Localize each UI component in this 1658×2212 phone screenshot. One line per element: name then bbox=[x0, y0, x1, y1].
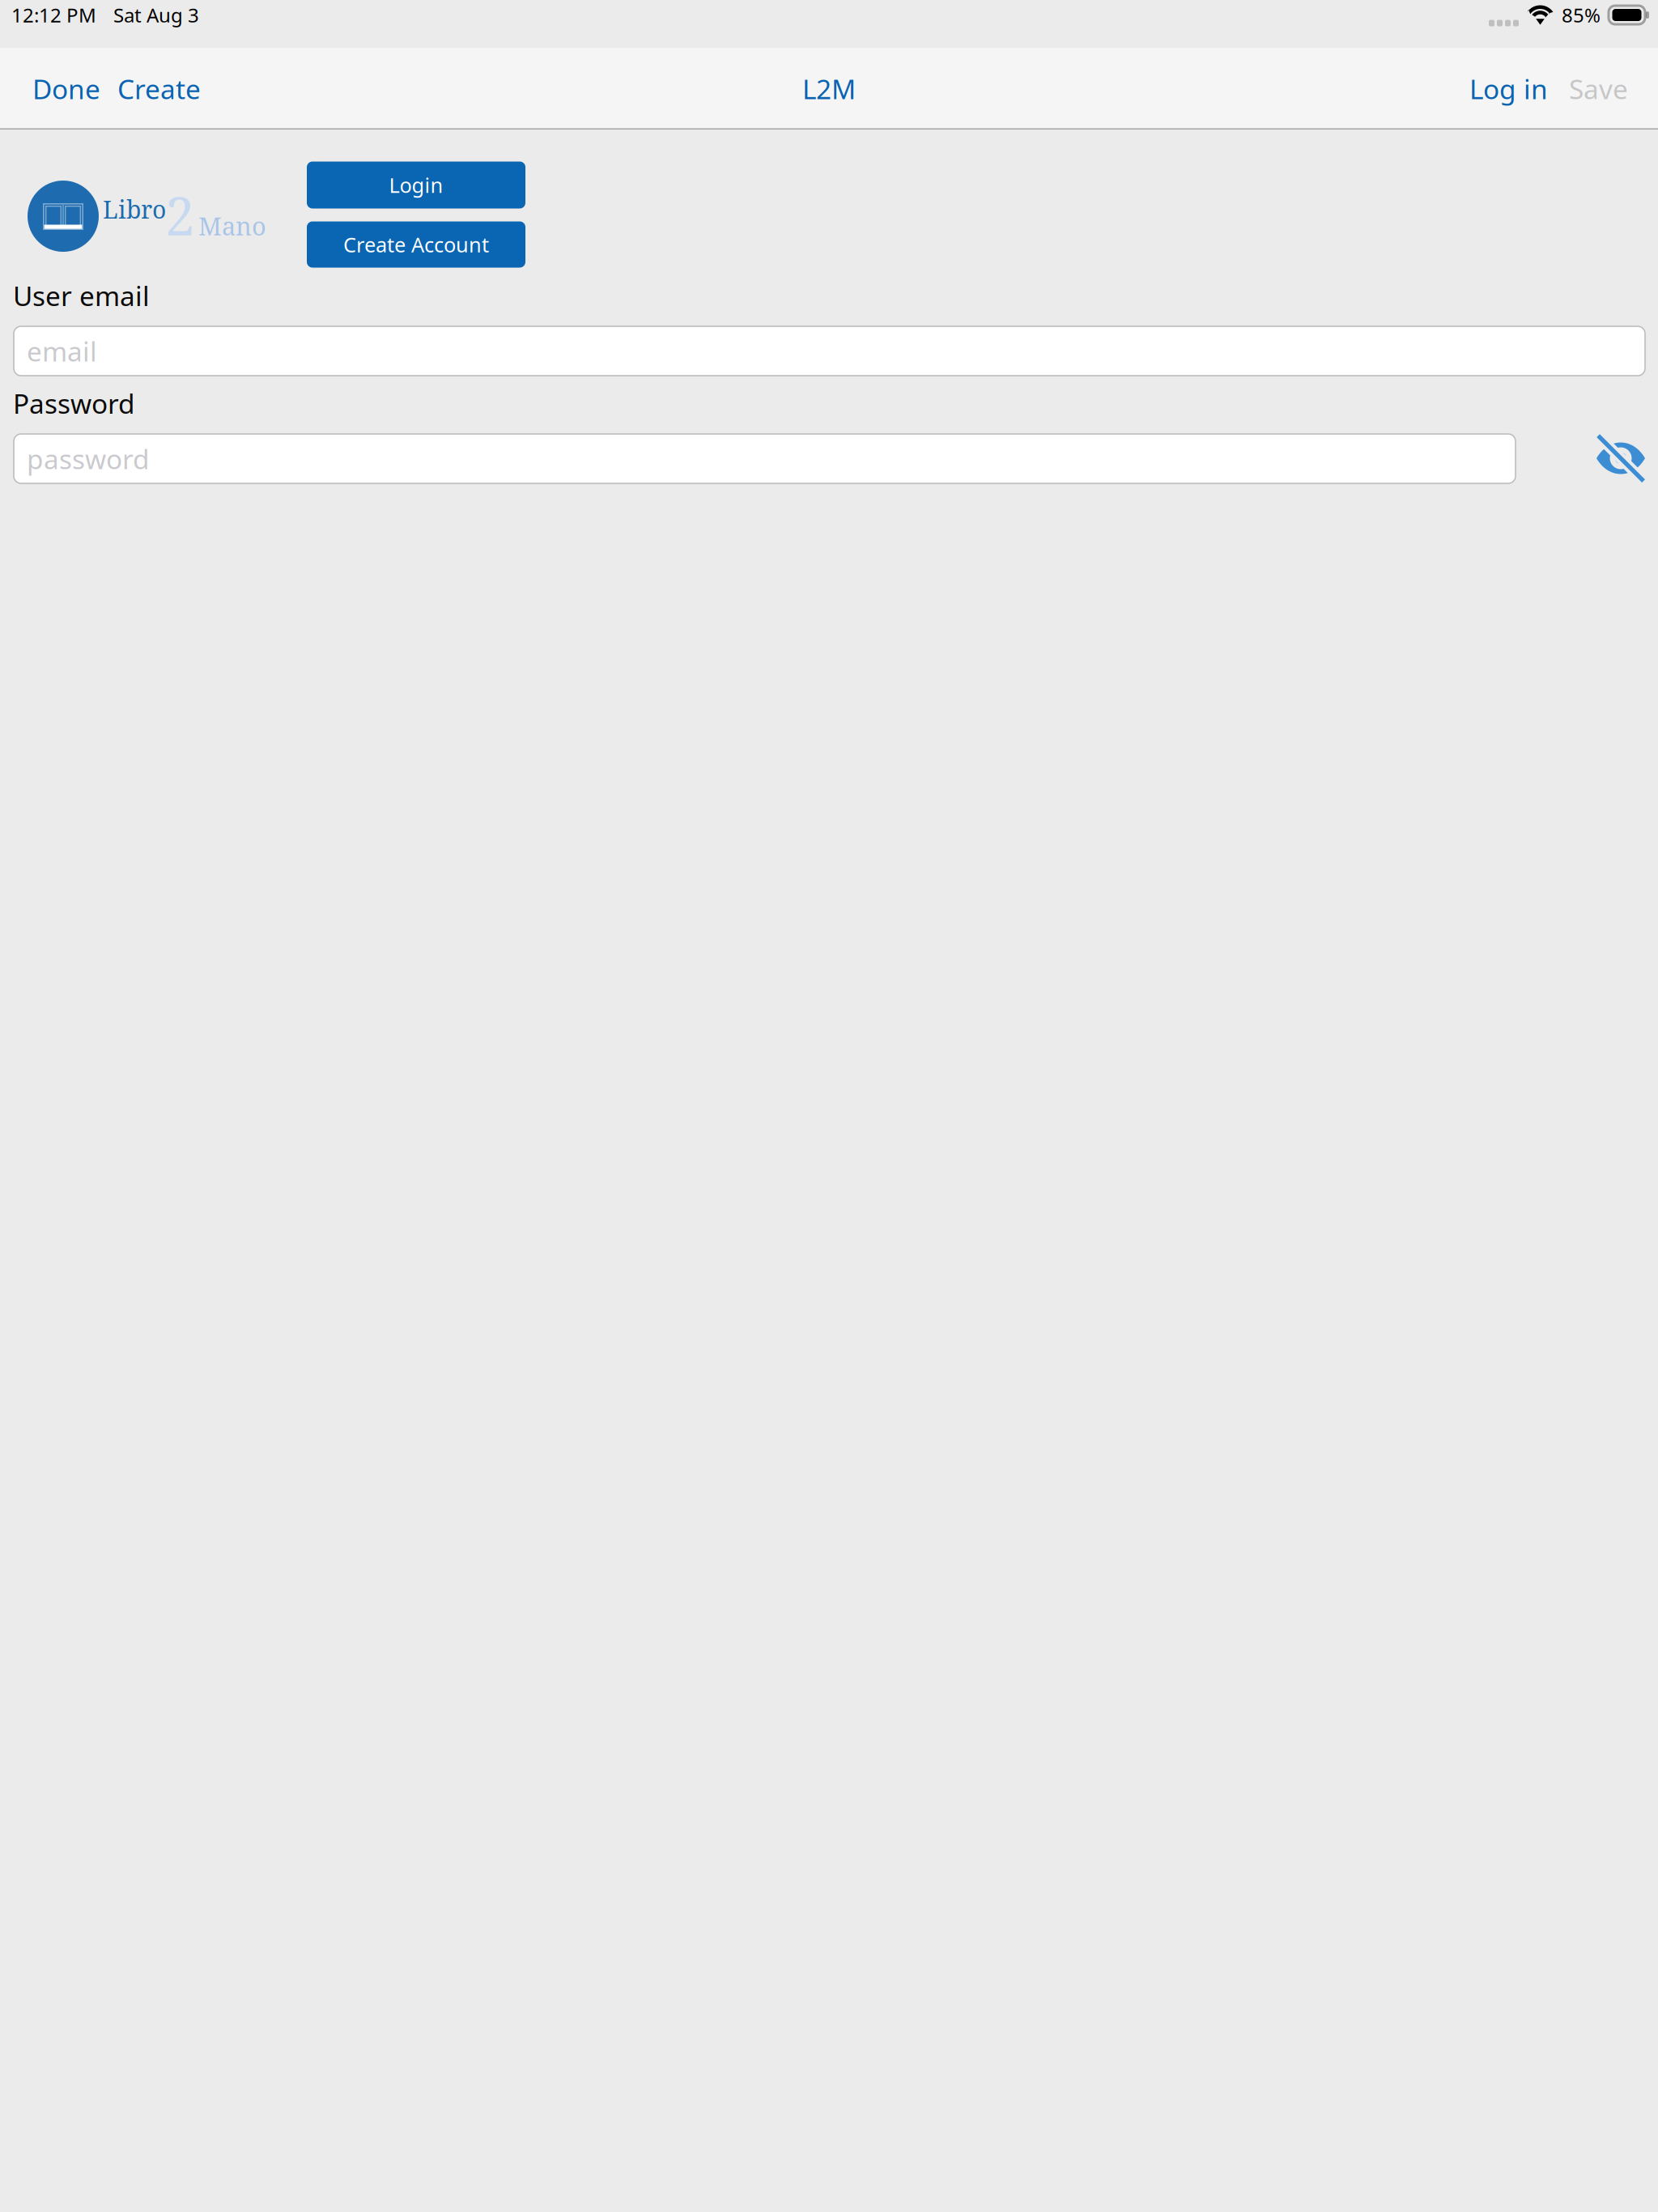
staticText: 85% bbox=[1562, 2, 1601, 28]
staticText: 12:12 PM bbox=[11, 2, 96, 28]
button[interactable]: email bbox=[14, 326, 1645, 376]
staticText: Login bbox=[389, 171, 443, 199]
staticText: Mano bbox=[198, 209, 266, 243]
button[interactable]: Done bbox=[32, 58, 100, 120]
button[interactable]: Create Account bbox=[307, 221, 525, 268]
staticText: Create bbox=[117, 71, 201, 107]
staticText: email bbox=[27, 333, 97, 369]
staticText: Save bbox=[1569, 71, 1628, 107]
button[interactable]: Save bbox=[1569, 58, 1628, 120]
button[interactable]: Log in bbox=[1469, 58, 1548, 120]
staticText: Libro bbox=[103, 193, 166, 226]
button[interactable]: password bbox=[14, 434, 1516, 483]
button[interactable]: Create bbox=[117, 58, 201, 120]
staticText: L2M bbox=[802, 71, 856, 107]
staticText: Password bbox=[13, 385, 135, 421]
staticText: Sat Aug 3 bbox=[113, 2, 199, 28]
staticText: 2 bbox=[165, 179, 195, 251]
button[interactable]: Show password bbox=[1596, 433, 1646, 483]
staticText: User email bbox=[13, 278, 150, 314]
staticText: Done bbox=[32, 71, 100, 107]
staticText: Create Account bbox=[343, 231, 489, 258]
staticText: Log in bbox=[1469, 71, 1548, 107]
staticText: password bbox=[27, 441, 150, 477]
button[interactable]: Login bbox=[307, 162, 525, 208]
